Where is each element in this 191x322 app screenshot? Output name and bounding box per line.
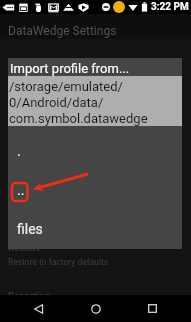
button[interactable]: Home bbox=[78, 295, 114, 322]
staticText: 3:22 PM bbox=[151, 1, 189, 13]
staticText: files bbox=[17, 221, 43, 237]
staticText: .. bbox=[17, 182, 25, 198]
button[interactable]: .. bbox=[8, 170, 182, 209]
staticText: Restore bbox=[8, 242, 42, 253]
staticText: Import profile from... bbox=[10, 61, 130, 76]
button[interactable]: files bbox=[8, 209, 182, 248]
staticText: DataWedge Settings bbox=[8, 24, 117, 38]
button[interactable]: Recent apps bbox=[134, 295, 170, 322]
button[interactable]: Back bbox=[21, 295, 57, 322]
staticText: Reporting bbox=[8, 290, 51, 301]
staticText: . bbox=[17, 143, 21, 159]
staticText: /storage/emulated/ 0/Android/data/ com.s… bbox=[9, 79, 148, 126]
staticText: Restore to factory defaults bbox=[8, 257, 109, 267]
